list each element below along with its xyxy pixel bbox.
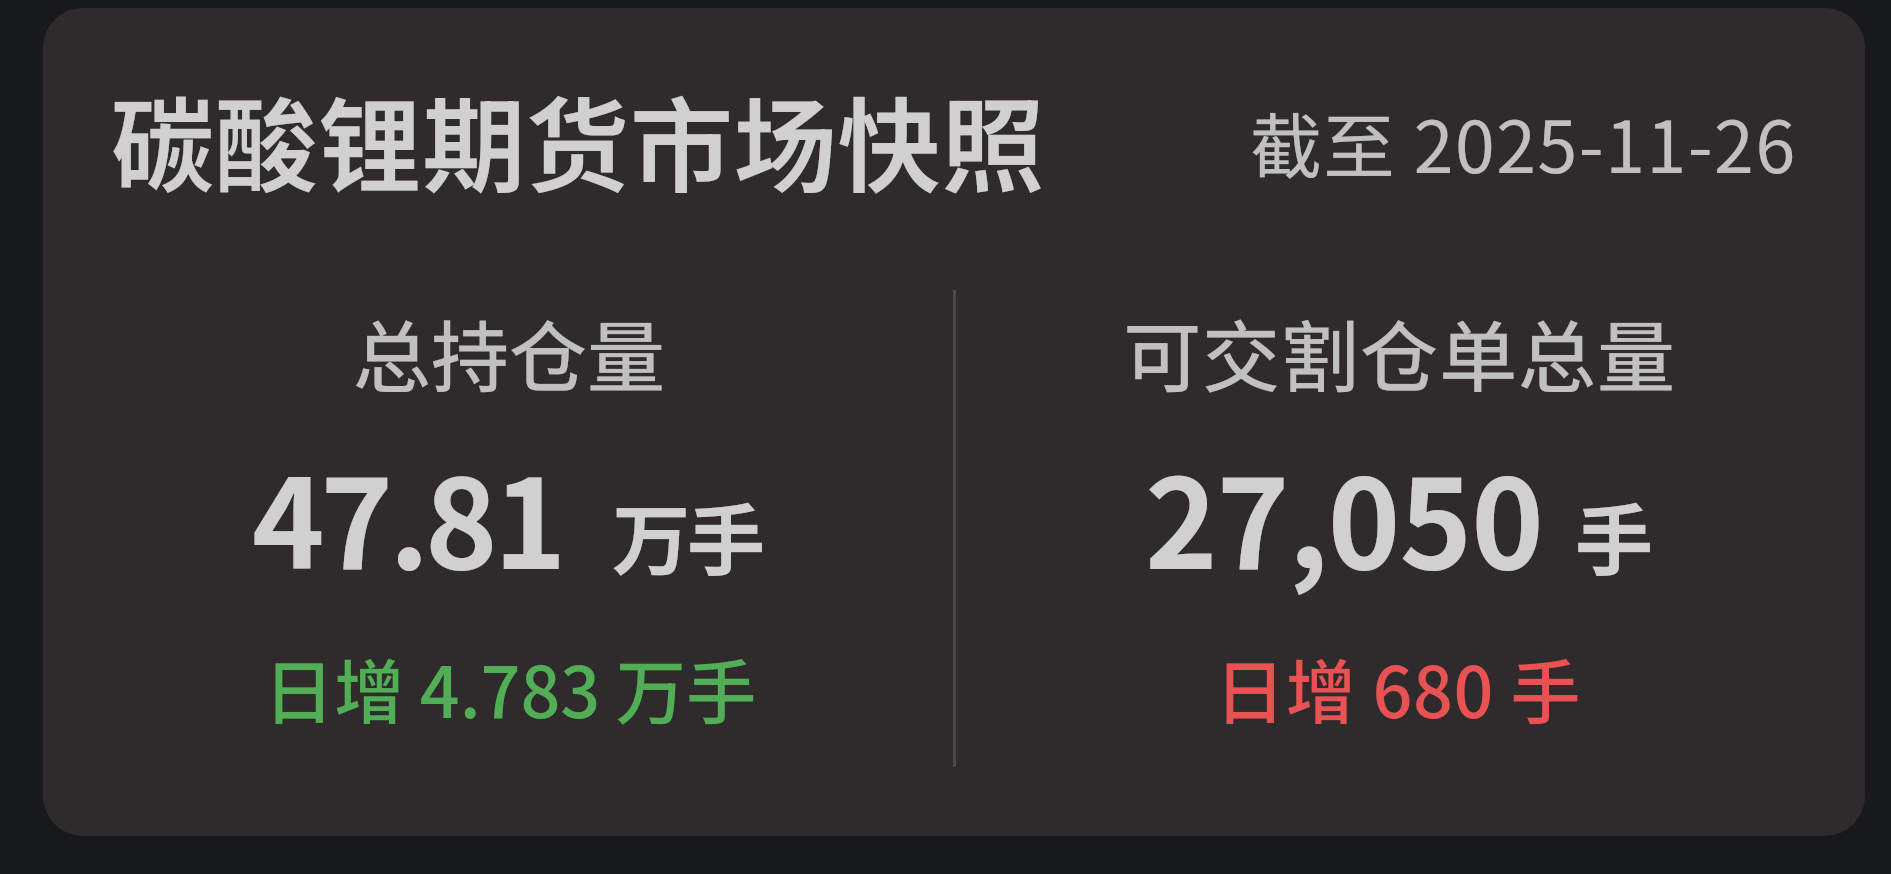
button[interactable] <box>961 268 1841 788</box>
staticText: 截至 2025-11-26 <box>1250 90 1797 194</box>
staticText: 万手 <box>612 479 763 592</box>
staticText: 27,050 <box>1145 426 1544 604</box>
staticText: 可交割仓单总量 <box>1123 296 1677 409</box>
staticText: 总持仓量 <box>353 296 666 409</box>
button[interactable] <box>67 268 947 788</box>
button[interactable] <box>43 8 1865 836</box>
staticText: 47.81 <box>252 426 563 604</box>
staticText: 日增 680 手 <box>1215 637 1581 738</box>
staticText: 手 <box>1575 479 1654 592</box>
staticText: 碳酸锂期货市场快照 <box>111 65 1046 214</box>
staticText: 日增 4.783 万手 <box>264 637 756 738</box>
